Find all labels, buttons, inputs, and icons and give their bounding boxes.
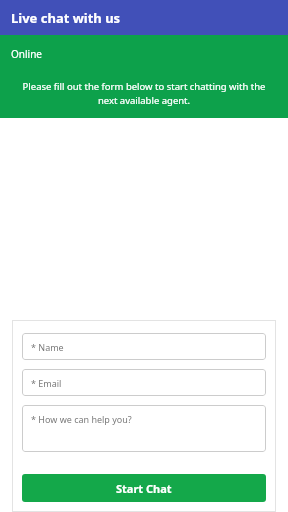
- button[interactable]: Start Chat: [22, 474, 266, 502]
- staticText: * Name: [31, 341, 64, 353]
- button[interactable]: * How we can help you?: [22, 405, 266, 452]
- staticText: * Email: [31, 377, 62, 389]
- staticText: Please fill out the form below to start …: [12, 80, 276, 107]
- staticText: * How we can help you?: [31, 413, 132, 425]
- staticText: Live chat with us: [11, 9, 121, 27]
- button[interactable]: * Name: [22, 333, 266, 360]
- button[interactable]: * Email: [22, 369, 266, 396]
- staticText: Start Chat: [116, 481, 172, 496]
- staticText: Online: [11, 47, 42, 61]
